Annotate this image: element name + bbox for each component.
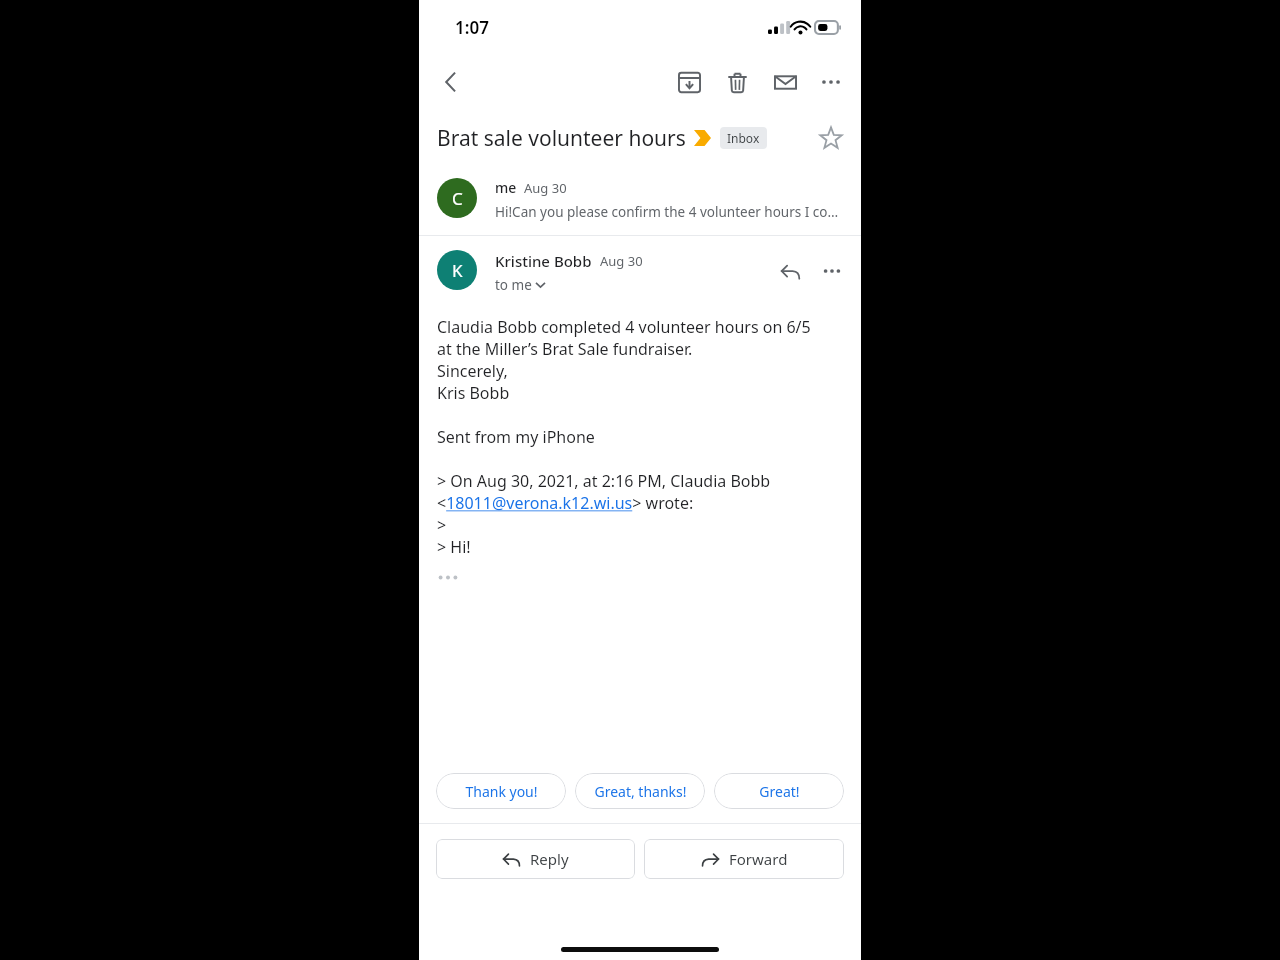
staticText: > On Aug 30, 2021, at 2:16 PM, Claudia B… — [437, 470, 771, 558]
button[interactable]: Archive — [667, 60, 711, 104]
button[interactable]: Mark unread — [763, 60, 807, 104]
button[interactable]: Show trimmed content — [437, 570, 459, 585]
button[interactable]: to me — [495, 276, 545, 294]
staticText: C — [452, 187, 463, 210]
staticText: Great! — [759, 782, 800, 801]
button[interactable]: More options — [811, 250, 853, 292]
staticText: K — [452, 259, 463, 282]
staticText: Aug 30 — [524, 179, 567, 197]
staticText: Aug 30 — [600, 252, 643, 270]
button[interactable]: Reply — [436, 839, 635, 879]
staticText: Inbox — [727, 130, 760, 146]
staticText: Reply — [530, 849, 569, 869]
staticText: Claudia Bobb completed 4 volunteer hours… — [437, 316, 811, 404]
button[interactable]: Star — [809, 116, 853, 160]
staticText: Thank you! — [465, 782, 538, 801]
button[interactable]: Great! — [714, 773, 844, 809]
staticText: Sent from my iPhone — [437, 426, 595, 448]
button[interactable]: Forward — [644, 839, 844, 879]
button[interactable]: More options — [809, 60, 853, 104]
button[interactable]: Reply — [769, 250, 811, 292]
button[interactable]: Delete — [715, 60, 759, 104]
staticText: Hi!Can you please confirm the 4 voluntee… — [495, 203, 843, 221]
button[interactable]: C — [419, 174, 861, 235]
staticText: Great, thanks! — [594, 782, 687, 801]
staticText: Forward — [729, 849, 788, 869]
staticText: me — [495, 178, 517, 197]
button[interactable]: Inbox — [720, 127, 767, 149]
staticText: Brat sale volunteer hours — [437, 124, 686, 153]
button[interactable]: Thank you! — [436, 773, 566, 809]
button[interactable]: Great, thanks! — [575, 773, 705, 809]
staticText: Kristine Bobb — [495, 251, 592, 271]
staticText: 1:07 — [455, 16, 489, 39]
button[interactable]: Back — [427, 58, 475, 106]
staticText: to me — [495, 276, 532, 294]
